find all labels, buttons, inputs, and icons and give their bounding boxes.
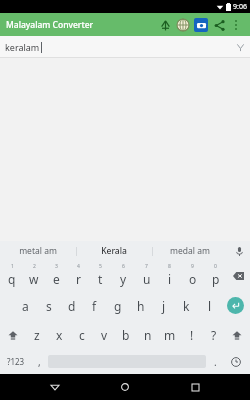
button[interactable]: Kerala [76, 241, 152, 261]
button[interactable]: Back [40, 374, 70, 400]
staticText: t [98, 271, 103, 287]
button[interactable]: c [71, 320, 93, 349]
button[interactable]: ! [181, 320, 203, 349]
staticText: k [183, 298, 190, 314]
button[interactable]: medal am [152, 241, 228, 261]
staticText: ?123 [7, 356, 25, 367]
button[interactable]: v [93, 320, 115, 349]
staticText: x [56, 327, 63, 343]
button[interactable]: d [60, 291, 83, 320]
staticText: o [189, 271, 197, 287]
button[interactable]: keralam [0, 36, 250, 58]
staticText: 9:06 [233, 2, 247, 12]
staticText: j [162, 298, 166, 314]
staticText: , [38, 355, 41, 369]
staticText: 6 [122, 263, 125, 270]
button[interactable]: Shift [1, 320, 25, 349]
staticText: ? [211, 327, 217, 343]
button[interactable]: j [152, 291, 175, 320]
button[interactable]: h [129, 291, 152, 320]
staticText: q [8, 271, 16, 287]
button[interactable]: , [30, 349, 48, 374]
staticText: medal am [170, 245, 210, 257]
button[interactable]: 1 [1, 261, 23, 291]
staticText: 9 [191, 263, 194, 270]
button[interactable]: s [37, 291, 60, 320]
staticText: w [29, 271, 39, 287]
button[interactable]: Translate [156, 16, 174, 34]
staticText: 7 [145, 263, 148, 270]
button[interactable]: More options [228, 17, 244, 33]
button[interactable]: m [159, 320, 181, 349]
button[interactable]: 4 [67, 261, 89, 291]
button[interactable]: g [106, 291, 129, 320]
button[interactable]: ?123 [2, 349, 30, 374]
button[interactable]: 7 [135, 261, 158, 291]
staticText: 1 [11, 263, 14, 270]
staticText: e [53, 271, 60, 287]
button[interactable]: metal am [0, 241, 76, 261]
staticText: g [114, 298, 122, 314]
button[interactable]: a [13, 291, 37, 320]
button[interactable]: . [206, 349, 224, 374]
staticText: 3 [55, 263, 58, 270]
staticText: m [164, 327, 176, 343]
button[interactable]: b [115, 320, 137, 349]
staticText: metal am [19, 245, 57, 257]
staticText: c [79, 327, 85, 343]
button[interactable]: 5 [89, 261, 112, 291]
staticText: y [120, 271, 127, 287]
staticText: 2 [33, 263, 36, 270]
staticText: ! [190, 327, 194, 343]
button[interactable]: Enter [221, 291, 249, 320]
button[interactable]: ? [203, 320, 225, 349]
button[interactable]: Delete [227, 261, 249, 291]
staticText: s [46, 298, 52, 314]
staticText: n [144, 327, 152, 343]
button[interactable]: z [25, 320, 48, 349]
button[interactable]: Emoji [224, 349, 248, 374]
button[interactable]: 3 [45, 261, 67, 291]
button[interactable]: Camera [192, 16, 210, 34]
button[interactable]: 9 [181, 261, 204, 291]
button[interactable]: Shift [225, 320, 249, 349]
button[interactable]: 8 [158, 261, 181, 291]
button[interactable]: n [137, 320, 159, 349]
button[interactable]: 2 [23, 261, 45, 291]
staticText: 4 [77, 263, 80, 270]
button[interactable]: x [48, 320, 71, 349]
staticText: . [214, 355, 217, 369]
staticText: i [168, 271, 172, 287]
staticText: v [101, 327, 108, 343]
staticText: Malayalam Converter [6, 19, 94, 31]
staticText: 0 [214, 263, 217, 270]
button[interactable]: Share [210, 16, 228, 34]
staticText: Kerala [101, 245, 127, 257]
button[interactable]: Language [174, 16, 192, 34]
button[interactable]: Home [110, 374, 140, 400]
staticText: 5 [99, 263, 102, 270]
button[interactable]: l [198, 291, 221, 320]
staticText: keralam [5, 41, 40, 53]
staticText: l [208, 298, 212, 314]
button[interactable]: Voice input [228, 241, 250, 261]
staticText: h [137, 298, 145, 314]
button[interactable]: f [83, 291, 106, 320]
button[interactable]: 6 [112, 261, 135, 291]
staticText: d [68, 298, 76, 314]
staticText: 8 [168, 263, 171, 270]
button[interactable]: 0 [204, 261, 227, 291]
staticText: z [34, 327, 40, 343]
staticText: p [212, 271, 220, 287]
staticText: f [92, 298, 97, 314]
staticText: b [122, 327, 130, 343]
staticText: u [143, 271, 151, 287]
button[interactable]: k [175, 291, 198, 320]
button[interactable]: Recent apps [180, 374, 210, 400]
staticText: r [76, 271, 81, 287]
staticText: a [22, 298, 29, 314]
